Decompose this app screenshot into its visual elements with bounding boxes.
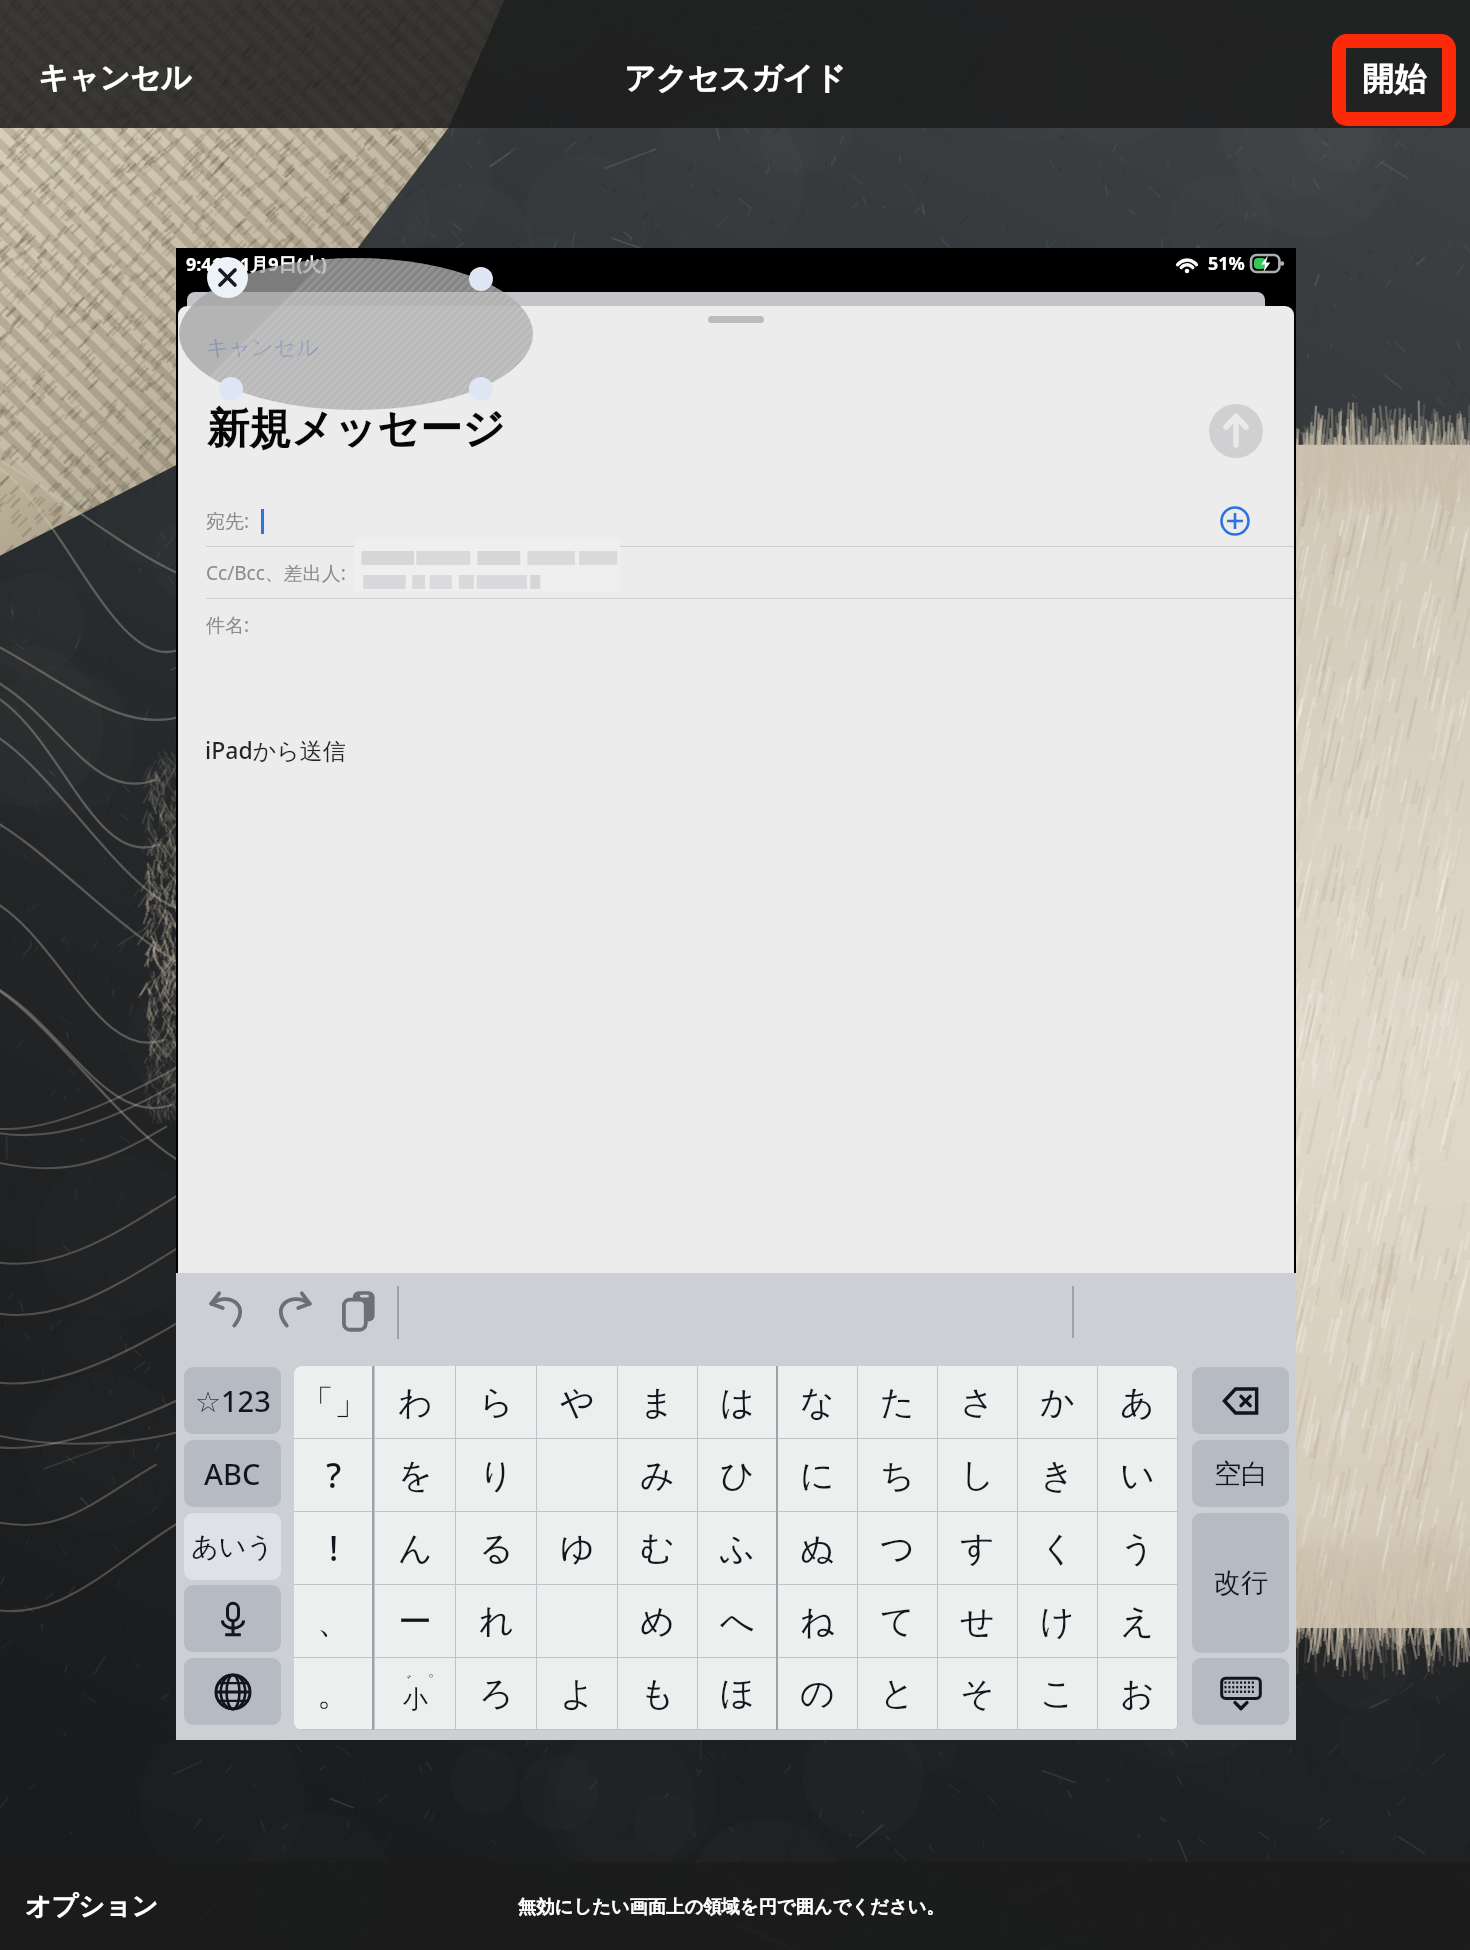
- button[interactable]: 開始: [1332, 34, 1456, 126]
- button[interactable]: こ: [1018, 1658, 1097, 1729]
- button[interactable]: し: [938, 1439, 1017, 1511]
- button[interactable]: ら: [456, 1366, 536, 1438]
- button[interactable]: り: [456, 1439, 536, 1511]
- button[interactable]: Send: [1209, 404, 1263, 458]
- button[interactable]: ね: [778, 1585, 857, 1657]
- button[interactable]: め: [618, 1585, 697, 1657]
- button[interactable]: Hide keyboard: [1192, 1658, 1289, 1725]
- button[interactable]: よ: [537, 1658, 617, 1729]
- staticText: 「」: [300, 1381, 368, 1424]
- button[interactable]: た: [858, 1366, 937, 1438]
- button[interactable]: ー: [375, 1585, 455, 1657]
- button[interactable]: Redo: [267, 1284, 319, 1336]
- button[interactable]: 件名:: [178, 599, 1294, 651]
- button[interactable]: 空白: [1192, 1440, 1289, 1507]
- button[interactable]: つ: [858, 1512, 937, 1584]
- button[interactable]: Change keyboard: [184, 1658, 281, 1725]
- button[interactable]: ろ: [456, 1658, 536, 1729]
- button[interactable]: 改行: [1192, 1513, 1289, 1653]
- button[interactable]: を: [375, 1439, 455, 1511]
- staticText: つ: [880, 1527, 915, 1570]
- staticText: ね: [800, 1600, 835, 1643]
- button[interactable]: て: [858, 1585, 937, 1657]
- button[interactable]: す: [938, 1512, 1017, 1584]
- button[interactable]: キャンセル: [14, 52, 200, 104]
- button[interactable]: キャンセル: [198, 332, 318, 364]
- button[interactable]: れ: [456, 1585, 536, 1657]
- button[interactable]: へ: [698, 1585, 777, 1657]
- staticText: 51%: [1208, 251, 1245, 276]
- button[interactable]: ぬ: [778, 1512, 857, 1584]
- button[interactable]: け: [1018, 1585, 1097, 1657]
- button[interactable]: Remove area: [207, 257, 248, 298]
- button[interactable]: せ: [938, 1585, 1017, 1657]
- staticText: 小: [403, 1684, 428, 1715]
- button[interactable]: 、: [294, 1585, 374, 1657]
- button[interactable]: 「」: [294, 1366, 374, 1438]
- button[interactable]: わ: [375, 1366, 455, 1438]
- staticText: 空白: [1214, 1457, 1268, 1491]
- button[interactable]: Backspace: [1192, 1367, 1289, 1434]
- button[interactable]: お: [1098, 1658, 1177, 1729]
- button[interactable]: そ: [938, 1658, 1017, 1729]
- button[interactable]: オプション: [8, 1882, 178, 1930]
- button[interactable]: ま: [618, 1366, 697, 1438]
- button[interactable]: ?: [294, 1439, 374, 1511]
- button[interactable]: な: [778, 1366, 857, 1438]
- button[interactable]: !: [294, 1512, 374, 1584]
- button[interactable]: く: [1018, 1512, 1097, 1584]
- staticText: ろ: [479, 1672, 514, 1715]
- button[interactable]: ABC: [184, 1440, 281, 1507]
- staticText: わ: [398, 1381, 433, 1424]
- staticText: 。: [317, 1672, 351, 1715]
- staticText: め: [640, 1600, 675, 1643]
- staticText: ゛ ゜: [395, 1670, 435, 1693]
- button[interactable]: 小: [375, 1658, 455, 1729]
- staticText: ☆123: [195, 1381, 271, 1420]
- button[interactable]: ゆ: [537, 1512, 617, 1584]
- button[interactable]: う: [1098, 1512, 1177, 1584]
- button[interactable]: Paste: [333, 1284, 385, 1336]
- button[interactable]: の: [778, 1658, 857, 1729]
- button[interactable]: 。: [294, 1658, 374, 1729]
- button[interactable]: Undo: [202, 1284, 254, 1336]
- staticText: か: [1040, 1381, 1075, 1424]
- button[interactable]: や: [537, 1366, 617, 1438]
- staticText: こ: [1040, 1672, 1075, 1715]
- button[interactable]: あ: [1098, 1366, 1177, 1438]
- button[interactable]: む: [618, 1512, 697, 1584]
- staticText: え: [1120, 1600, 1155, 1643]
- button[interactable]: ふ: [698, 1512, 777, 1584]
- button[interactable]: ち: [858, 1439, 937, 1511]
- button[interactable]: ひ: [698, 1439, 777, 1511]
- staticText: アクセスガイド: [624, 59, 847, 98]
- staticText: オプション: [25, 1890, 159, 1923]
- button[interactable]: ん: [375, 1512, 455, 1584]
- staticText: よ: [560, 1672, 595, 1715]
- button[interactable]: も: [618, 1658, 697, 1729]
- button[interactable]: き: [1018, 1439, 1097, 1511]
- button[interactable]: Add recipient: [1220, 506, 1250, 536]
- button[interactable]: あいう: [184, 1513, 281, 1580]
- staticText: ん: [398, 1527, 433, 1570]
- button[interactable]: み: [618, 1439, 697, 1511]
- button[interactable]: ☆123: [184, 1367, 281, 1434]
- button[interactable]: か: [1018, 1366, 1097, 1438]
- button[interactable]: さ: [938, 1366, 1017, 1438]
- button[interactable]: に: [778, 1439, 857, 1511]
- button[interactable]: る: [456, 1512, 536, 1584]
- button[interactable]: は: [698, 1366, 777, 1438]
- button[interactable]: 宛先:: [178, 495, 1294, 547]
- button[interactable]: え: [1098, 1585, 1177, 1657]
- button[interactable]: Cc/Bcc、差出人:: [178, 547, 1294, 599]
- button[interactable]: Dictation: [184, 1585, 281, 1652]
- button[interactable]: と: [858, 1658, 937, 1729]
- button[interactable]: ほ: [698, 1658, 777, 1729]
- staticText: ひ: [720, 1454, 755, 1497]
- button[interactable]: い: [1098, 1439, 1177, 1511]
- staticText: を: [398, 1454, 433, 1497]
- staticText: 無効にしたい画面上の領域を円で囲んでください。: [518, 1895, 945, 1918]
- staticText: に: [800, 1454, 835, 1497]
